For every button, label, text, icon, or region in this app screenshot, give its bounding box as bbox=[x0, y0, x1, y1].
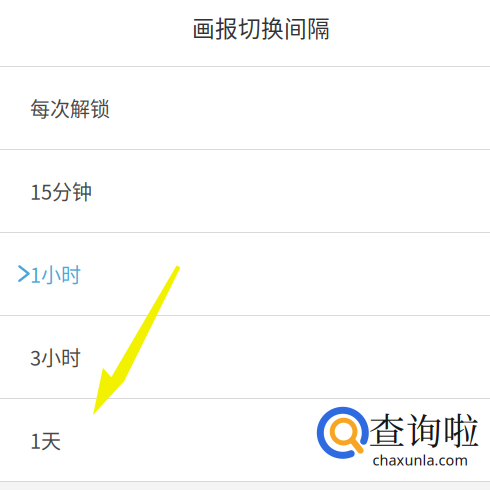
button[interactable]: 15分钟 bbox=[0, 150, 490, 232]
staticText: 1小时 bbox=[30, 259, 81, 288]
staticText: 每次解锁 bbox=[30, 93, 110, 122]
staticText: 1天 bbox=[30, 425, 61, 454]
button[interactable]: 1小时 bbox=[0, 233, 490, 315]
staticText: chaxunla.com bbox=[372, 450, 467, 470]
staticText: 查询啦 bbox=[368, 403, 479, 455]
button[interactable]: 1天 bbox=[0, 399, 490, 481]
staticText: 15分钟 bbox=[30, 176, 92, 205]
staticText: 3小时 bbox=[30, 342, 81, 371]
button[interactable]: 3小时 bbox=[0, 316, 490, 398]
staticText: 画报切换间隔 bbox=[192, 11, 330, 43]
button[interactable]: 每次解锁 bbox=[0, 67, 490, 149]
